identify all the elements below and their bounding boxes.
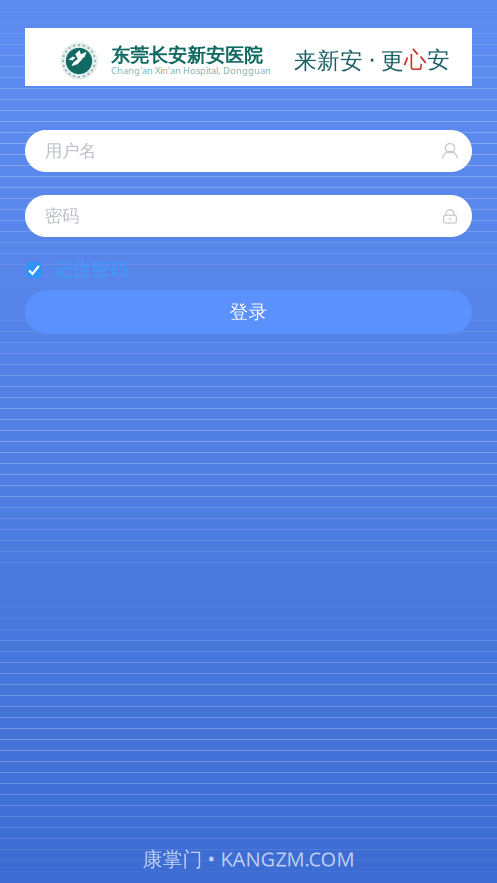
staticText: 心 [404, 46, 427, 74]
staticText: 记住密码 [53, 258, 129, 281]
staticText: 安 [427, 46, 450, 74]
staticText: Chang'an Xin'an Hospital, Dongguan [111, 64, 271, 77]
staticText: 康掌门 • KANGZM.COM [142, 845, 354, 872]
staticText: 登录 [229, 300, 267, 323]
staticText: 密码 [45, 205, 79, 227]
staticText: 东莞长安新安医院 [111, 44, 263, 67]
button[interactable]: 登录 [0, 290, 497, 334]
staticText: 用户名 [45, 140, 96, 162]
staticText: 来新安 · 更 [294, 45, 404, 75]
button[interactable]: 记住密码 [0, 261, 497, 279]
